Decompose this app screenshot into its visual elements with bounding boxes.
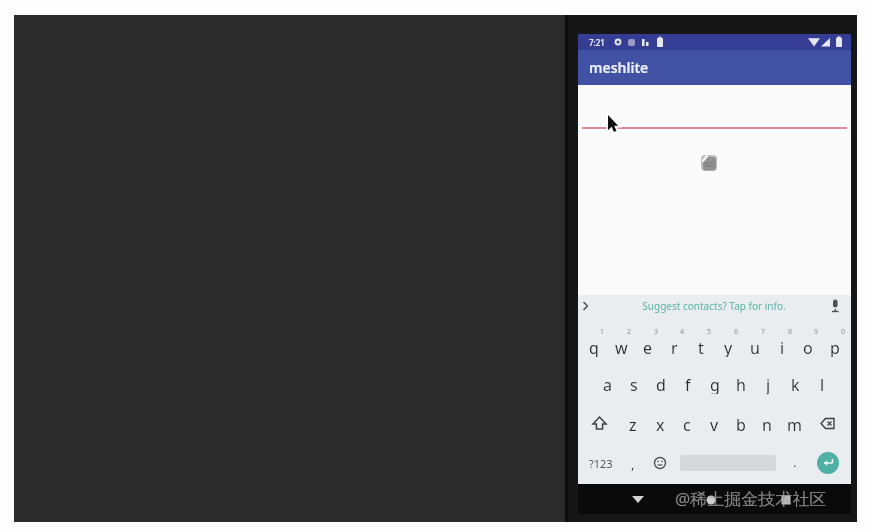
- staticText: c: [683, 414, 691, 434]
- staticText: j: [766, 374, 771, 394]
- button[interactable]: i: [770, 337, 794, 357]
- staticText: 2: [627, 327, 632, 337]
- button[interactable]: f: [676, 374, 700, 394]
- button[interactable]: [578, 295, 851, 317]
- button[interactable]: g: [703, 374, 727, 394]
- button[interactable]: [815, 414, 839, 434]
- button[interactable]: [778, 491, 794, 507]
- button[interactable]: [703, 491, 719, 507]
- staticText: l: [820, 374, 825, 394]
- staticText: 7: [761, 327, 766, 337]
- staticText: m: [787, 414, 802, 434]
- staticText: 8: [788, 327, 793, 337]
- button[interactable]: j: [756, 374, 780, 394]
- staticText: q: [589, 337, 599, 357]
- staticText: 9: [814, 327, 819, 337]
- staticText: @稀土掘金技术社区: [675, 487, 827, 510]
- staticText: ,: [631, 455, 635, 471]
- button[interactable]: n: [755, 414, 779, 434]
- button[interactable]: [588, 414, 612, 434]
- staticText: 0: [841, 327, 846, 337]
- staticText: ?123: [589, 456, 613, 471]
- staticText: 3: [654, 327, 659, 337]
- staticText: n: [762, 414, 772, 434]
- button[interactable]: l: [810, 374, 834, 394]
- button[interactable]: r: [662, 337, 686, 357]
- staticText: a: [603, 374, 612, 394]
- button[interactable]: x: [648, 414, 672, 434]
- button[interactable]: k: [783, 374, 807, 394]
- button[interactable]: y: [716, 337, 740, 357]
- staticText: s: [630, 374, 638, 394]
- staticText: t: [698, 337, 704, 357]
- staticText: 7:21: [589, 37, 605, 48]
- button[interactable]: ,: [627, 455, 639, 471]
- button[interactable]: .: [789, 453, 801, 469]
- button[interactable]: m: [782, 414, 806, 434]
- staticText: meshlite: [589, 58, 649, 77]
- button[interactable]: h: [729, 374, 753, 394]
- button[interactable]: [652, 455, 668, 471]
- button[interactable]: o: [796, 337, 820, 357]
- staticText: v: [710, 414, 719, 434]
- staticText: 4: [680, 327, 685, 337]
- button[interactable]: v: [702, 414, 726, 434]
- button[interactable]: w: [609, 337, 633, 357]
- staticText: 1: [600, 327, 605, 337]
- button[interactable]: z: [621, 414, 645, 434]
- button[interactable]: t: [689, 337, 713, 357]
- staticText: y: [724, 337, 733, 357]
- button[interactable]: b: [729, 414, 753, 434]
- staticText: e: [643, 337, 653, 357]
- staticText: x: [656, 414, 665, 434]
- staticText: 6: [734, 327, 739, 337]
- button[interactable]: [817, 452, 839, 474]
- button[interactable]: s: [622, 374, 646, 394]
- button[interactable]: [578, 85, 851, 295]
- button[interactable]: a: [595, 374, 619, 394]
- staticText: g: [710, 374, 720, 394]
- button[interactable]: e: [636, 337, 660, 357]
- staticText: d: [656, 374, 666, 394]
- button[interactable]: [628, 490, 648, 508]
- button[interactable]: d: [649, 374, 673, 394]
- button[interactable]: q: [582, 337, 606, 357]
- staticText: k: [791, 374, 800, 394]
- staticText: w: [615, 337, 628, 357]
- staticText: b: [736, 414, 746, 434]
- staticText: Suggest contacts? Tap for info.: [642, 299, 786, 313]
- staticText: 5: [707, 327, 712, 337]
- staticText: u: [750, 337, 760, 357]
- staticText: z: [629, 414, 637, 434]
- staticText: h: [736, 374, 746, 394]
- staticText: r: [671, 337, 678, 357]
- staticText: p: [830, 337, 840, 357]
- staticText: i: [780, 337, 785, 357]
- staticText: o: [803, 337, 813, 357]
- button[interactable]: c: [675, 414, 699, 434]
- staticText: f: [685, 374, 691, 394]
- button[interactable]: p: [823, 337, 847, 357]
- button[interactable]: u: [743, 337, 767, 357]
- staticText: .: [793, 453, 797, 469]
- button[interactable]: ?123: [588, 455, 614, 471]
